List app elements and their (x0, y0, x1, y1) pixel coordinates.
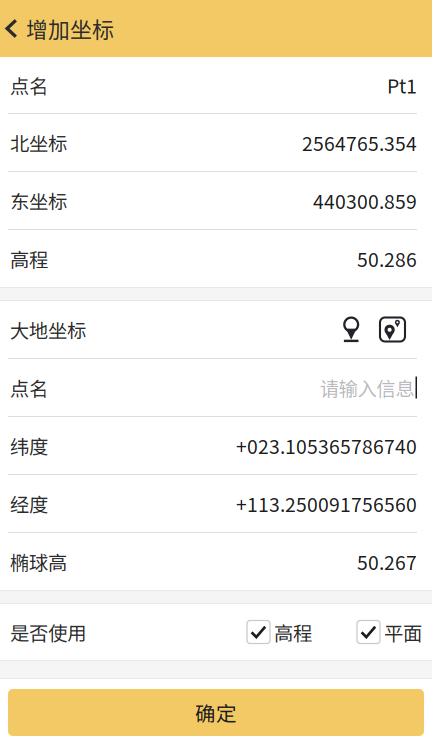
staticText: 是否使用 (10, 618, 86, 646)
staticText: 纬度 (10, 431, 48, 459)
button[interactable]: 东坐标 (0, 172, 432, 229)
button[interactable]: 点名 (0, 57, 432, 113)
button[interactable]: 经度 (0, 475, 432, 532)
staticText: 增加坐标 (26, 13, 114, 44)
button[interactable]: 纬度 (0, 417, 432, 474)
staticText: 点名 (10, 373, 48, 401)
staticText: 平面 (384, 618, 422, 646)
staticText: 大地坐标 (10, 315, 86, 343)
staticText: 经度 (10, 489, 48, 517)
button[interactable]: 平面 (357, 618, 422, 646)
staticText: 440300.859 (313, 186, 417, 214)
button[interactable]: 确定 (8, 689, 424, 736)
staticText: 2564765.354 (302, 128, 417, 156)
staticText: +023.105365786740 (236, 431, 417, 459)
staticText: 50.267 (357, 547, 417, 575)
staticText: 北坐标 (10, 128, 67, 156)
button[interactable]: 高程 (0, 230, 432, 287)
staticText: 确定 (195, 697, 237, 727)
staticText: 高程 (274, 618, 312, 646)
button[interactable]: 椭球高 (0, 533, 432, 590)
button[interactable]: 点名 (0, 359, 432, 416)
staticText: 50.286 (357, 244, 417, 272)
staticText: Pt1 (387, 71, 417, 99)
button[interactable]: 返回 (0, 0, 124, 57)
staticText: +113.250091756560 (236, 489, 417, 517)
button[interactable]: 高程 (247, 618, 312, 646)
button[interactable]: 北坐标 (0, 114, 432, 171)
button[interactable]: 地图选点 (380, 317, 405, 341)
staticText: 请输入信息 (319, 373, 414, 401)
staticText: 椭球高 (10, 547, 67, 575)
staticText: 点名 (10, 71, 48, 99)
staticText: 高程 (10, 244, 48, 272)
staticText: 东坐标 (10, 186, 67, 214)
button[interactable]: 采集当前位置 (343, 316, 360, 342)
